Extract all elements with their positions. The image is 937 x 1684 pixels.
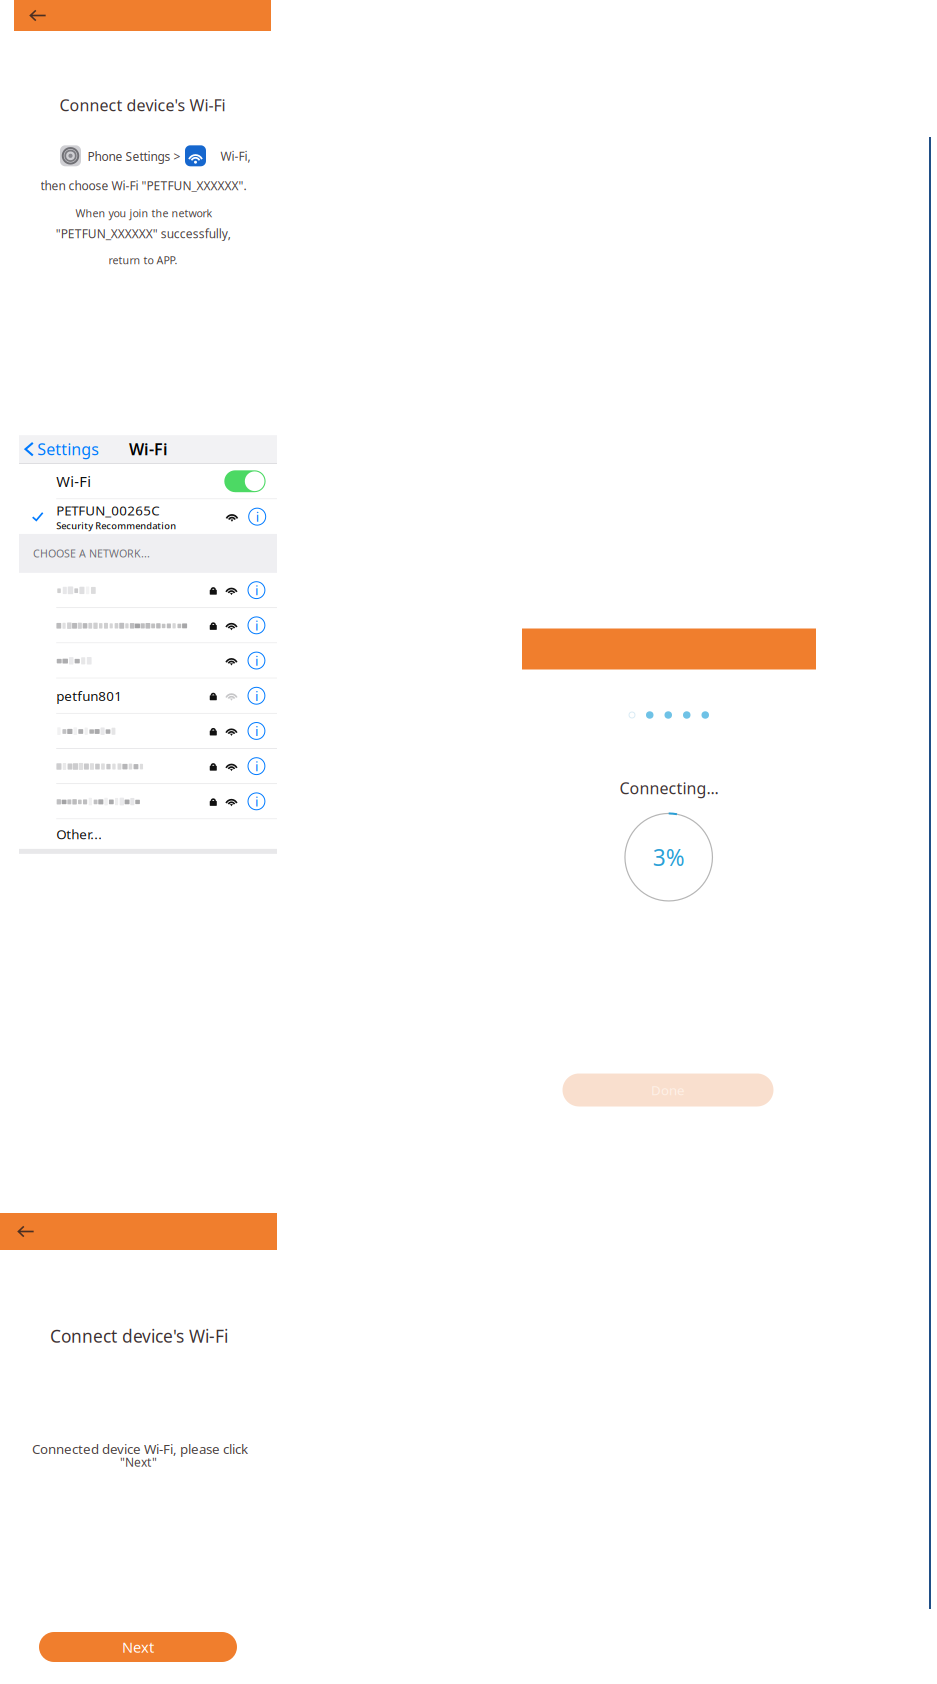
staticText: petfun801 xyxy=(56,687,122,705)
staticText: Phone Settings > xyxy=(87,148,180,164)
button[interactable]: Back xyxy=(14,0,271,31)
staticText: CHOOSE A NETWORK... xyxy=(33,546,150,561)
staticText: 3% xyxy=(653,842,685,872)
button[interactable]: petfun801 xyxy=(19,679,277,713)
staticText: Wi-Fi xyxy=(56,471,91,491)
staticText: Security Recommendation xyxy=(56,520,176,532)
staticText: Connecting... xyxy=(619,777,718,799)
staticText: Wi-Fi, xyxy=(220,148,250,164)
staticText: Connect device's Wi-Fi xyxy=(50,1324,228,1347)
button[interactable]: Wi-Fi xyxy=(19,464,277,498)
staticText: i xyxy=(255,581,258,599)
staticText: When you join the network xyxy=(75,206,212,220)
button[interactable]: i xyxy=(19,608,277,642)
staticText: PETFUN_00265C xyxy=(56,501,159,519)
button[interactable]: Other... xyxy=(19,819,277,849)
staticText: i xyxy=(255,616,258,634)
staticText: then choose Wi-Fi "PETFUN_XXXXXX". xyxy=(41,177,247,193)
staticText: Connect device's Wi-Fi xyxy=(59,94,225,116)
button[interactable]: i xyxy=(19,714,277,748)
button[interactable]: Next xyxy=(39,1632,237,1662)
staticText: i xyxy=(255,652,258,669)
staticText: "Next" xyxy=(120,1454,157,1470)
staticText: Next xyxy=(122,1637,154,1657)
button[interactable]: i xyxy=(19,749,277,783)
staticText: return to APP. xyxy=(109,253,178,267)
staticText: Wi-Fi xyxy=(129,438,168,460)
staticText: Done xyxy=(651,1081,685,1099)
staticText: Other... xyxy=(56,825,102,843)
button[interactable]: i xyxy=(19,784,277,819)
staticText: i xyxy=(255,687,258,705)
button[interactable]: i xyxy=(19,643,277,678)
staticText: i xyxy=(255,792,258,810)
staticText: Settings xyxy=(37,438,99,460)
button[interactable]: Back xyxy=(0,1213,277,1250)
button[interactable]: Done xyxy=(562,1073,773,1106)
staticText: i xyxy=(256,508,259,525)
button[interactable]: Settings xyxy=(19,434,99,464)
staticText: Connected device Wi-Fi, please click xyxy=(32,1440,248,1458)
staticText: "PETFUN_XXXXXX" successfully, xyxy=(56,225,231,241)
staticText: i xyxy=(255,722,258,740)
button[interactable]: PETFUN_00265C xyxy=(19,499,277,534)
button[interactable]: i xyxy=(19,573,277,607)
staticText: i xyxy=(255,757,258,775)
